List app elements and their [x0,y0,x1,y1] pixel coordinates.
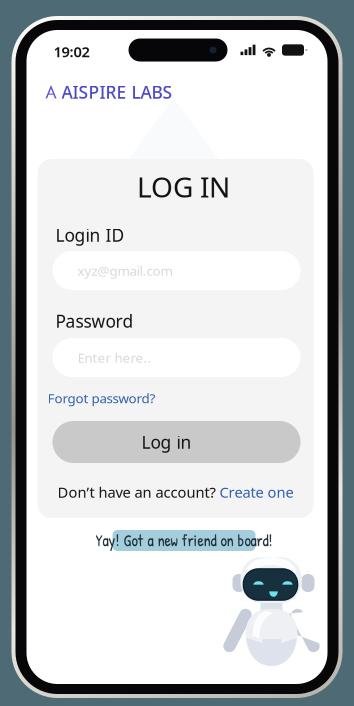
staticText: Yay! Got a new friend on board! [95,530,272,551]
staticText: Create one [219,482,293,502]
button[interactable]: Create one [219,482,293,502]
staticText: Don’t have an account? [57,482,219,502]
staticText: LOG IN [137,168,230,205]
button[interactable]: AISPIRE LABS [45,83,172,101]
staticText: Login ID [55,223,124,246]
staticText: Enter here.. [77,349,151,366]
staticText: Forgot password? [47,389,155,407]
staticText: Log in [141,430,191,453]
staticText: AISPIRE LABS [61,80,172,103]
staticText: Password [55,309,133,332]
button[interactable]: Log in [52,421,300,463]
staticText: xyz@gmail.com [77,262,172,279]
button[interactable]: Forgot password? [47,387,167,409]
staticText: 19:02 [53,42,89,61]
